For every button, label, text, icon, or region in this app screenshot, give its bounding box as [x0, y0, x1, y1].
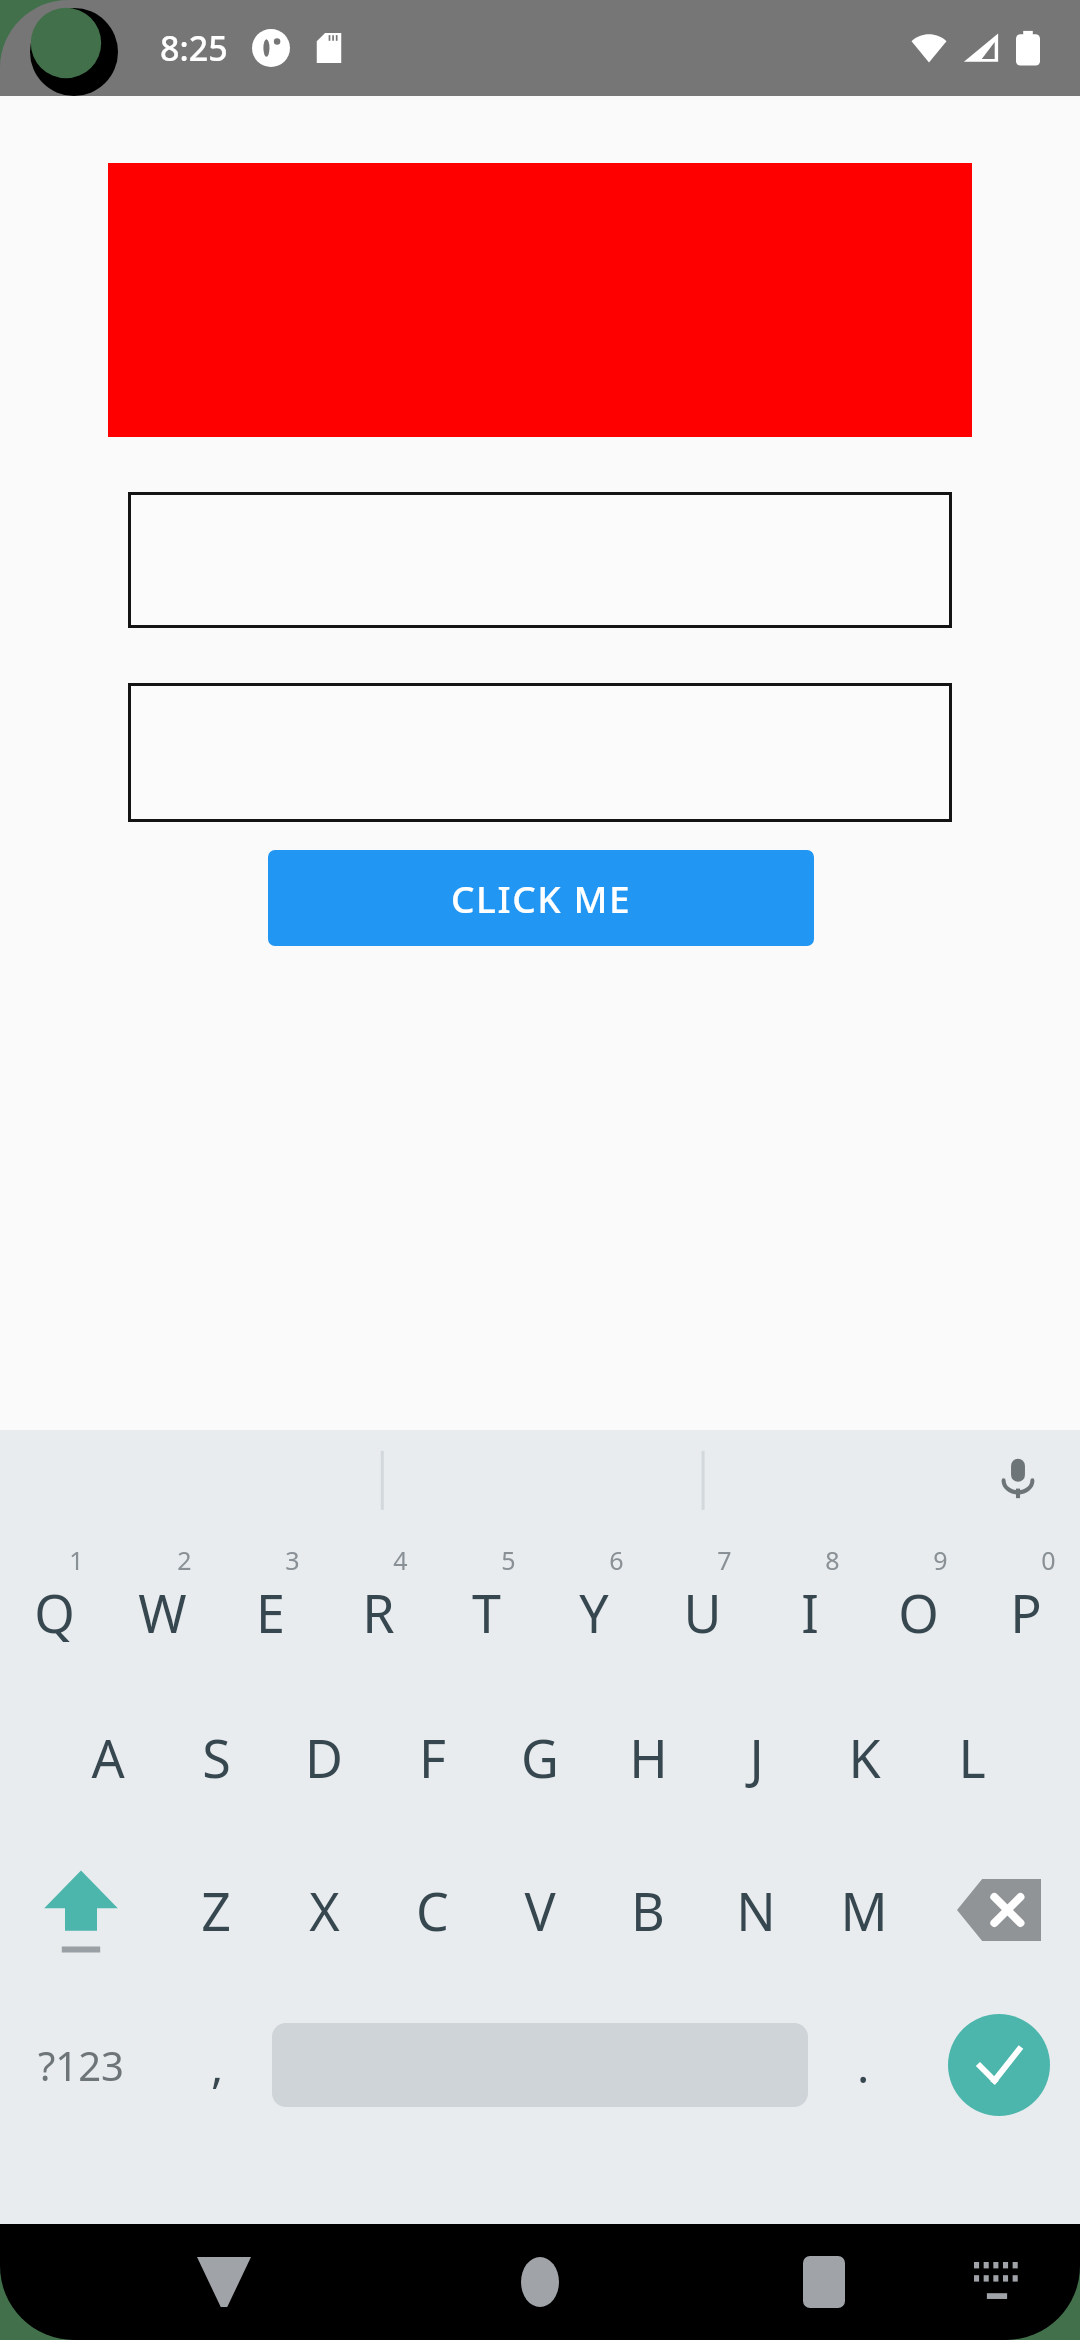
staticText: L	[958, 1722, 986, 1793]
button[interactable]: 0	[972, 1525, 1080, 1680]
button[interactable]: Recent apps	[782, 2240, 866, 2324]
button[interactable]: D	[270, 1680, 378, 1835]
staticText: K	[848, 1722, 881, 1793]
staticText: M	[840, 1875, 888, 1946]
staticText: Y	[579, 1577, 609, 1648]
button[interactable]: L	[918, 1680, 1026, 1835]
button[interactable]: H	[594, 1680, 702, 1835]
button[interactable]: M	[810, 1835, 918, 1985]
button[interactable]	[128, 492, 952, 628]
button[interactable]: F	[378, 1680, 486, 1835]
staticText: ?123	[38, 2038, 124, 2092]
staticText: D	[305, 1722, 343, 1793]
staticText: 7	[717, 1543, 732, 1577]
staticText: F	[419, 1722, 446, 1793]
button[interactable]: J	[702, 1680, 810, 1835]
staticText: O	[898, 1577, 939, 1648]
button[interactable]: ?123	[0, 1985, 162, 2145]
button[interactable]: Backspace	[918, 1835, 1080, 1985]
staticText: B	[631, 1875, 665, 1946]
button[interactable]: 7	[648, 1525, 756, 1680]
staticText: 9	[933, 1543, 948, 1577]
button[interactable]: A	[54, 1680, 162, 1835]
staticText: X	[309, 1875, 340, 1946]
button[interactable]: 6	[540, 1525, 648, 1680]
button[interactable]: 5	[432, 1525, 540, 1680]
button[interactable]	[128, 683, 952, 822]
button[interactable]: 9	[864, 1525, 972, 1680]
button[interactable]: Home	[498, 2240, 582, 2324]
staticText: 1	[69, 1543, 84, 1577]
staticText: 8:25	[160, 25, 228, 71]
staticText: .	[857, 2034, 870, 2097]
button[interactable]: B	[594, 1835, 702, 1985]
staticText: 3	[285, 1543, 300, 1577]
button[interactable]: CLICK ME	[268, 850, 814, 946]
staticText: S	[202, 1722, 231, 1793]
staticText: G	[521, 1722, 559, 1793]
staticText: V	[524, 1875, 556, 1946]
staticText: T	[472, 1577, 501, 1648]
staticText: C	[416, 1875, 449, 1946]
staticText: CLICK ME	[451, 873, 632, 923]
staticText: P	[1010, 1577, 1042, 1648]
staticText: 8	[825, 1543, 840, 1577]
button[interactable]: 3	[216, 1525, 324, 1680]
staticText: N	[736, 1875, 776, 1946]
button[interactable]: .	[808, 1985, 918, 2145]
button[interactable]: N	[702, 1835, 810, 1985]
button[interactable]: K	[810, 1680, 918, 1835]
button[interactable]: S	[162, 1680, 270, 1835]
staticText: A	[91, 1722, 125, 1793]
button[interactable]: 8	[756, 1525, 864, 1680]
button[interactable]: 4	[324, 1525, 432, 1680]
staticText: E	[256, 1577, 285, 1648]
button[interactable]: V	[486, 1835, 594, 1985]
button[interactable]: Back	[182, 2240, 266, 2324]
staticText: 4	[393, 1543, 408, 1577]
staticText: H	[629, 1722, 668, 1793]
staticText: 5	[501, 1543, 516, 1577]
button[interactable]: G	[486, 1680, 594, 1835]
button[interactable]: Voice input	[982, 1442, 1054, 1514]
staticText: 0	[1041, 1543, 1056, 1577]
button[interactable]: ,	[162, 1985, 272, 2145]
button[interactable]: X	[270, 1835, 378, 1985]
staticText: R	[362, 1577, 395, 1648]
button[interactable]: Switch keyboard	[962, 2247, 1032, 2317]
staticText: ,	[211, 2034, 224, 2097]
button[interactable]: 1	[0, 1525, 108, 1680]
button[interactable]: 2	[108, 1525, 216, 1680]
staticText: 2	[177, 1543, 192, 1577]
staticText: 6	[609, 1543, 624, 1577]
button[interactable]: C	[378, 1835, 486, 1985]
button[interactable]: Enter	[918, 1985, 1080, 2145]
staticText: Q	[34, 1577, 75, 1648]
staticText: J	[749, 1722, 764, 1793]
button[interactable]: Shift	[0, 1835, 162, 1985]
button[interactable]: Z	[162, 1835, 270, 1985]
staticText: Z	[201, 1875, 231, 1946]
staticText: I	[801, 1577, 819, 1648]
staticText: U	[683, 1577, 722, 1648]
staticText: W	[138, 1577, 187, 1648]
